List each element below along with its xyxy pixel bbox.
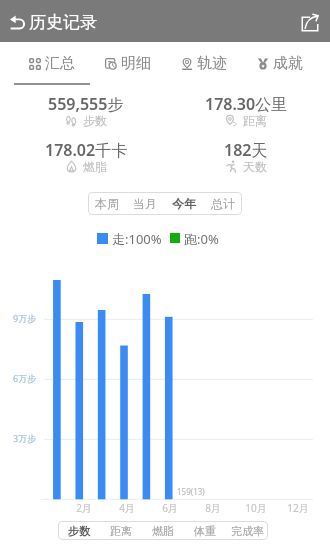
- staticText: 178.02千卡: [45, 139, 128, 161]
- button[interactable]: 体重: [184, 521, 226, 540]
- staticText: 159(13): [177, 486, 205, 497]
- staticText: 历史记录: [29, 12, 97, 33]
- staticText: 10月: [241, 501, 271, 515]
- staticText: 走:100%: [112, 230, 162, 246]
- staticText: 明细: [121, 54, 151, 73]
- staticText: 559,555步: [48, 93, 124, 115]
- staticText: 182天: [224, 139, 268, 161]
- staticText: 当月: [133, 196, 157, 211]
- button[interactable]: 完成率: [226, 521, 268, 540]
- button[interactable]: 559,555步: [26, 93, 146, 129]
- staticText: 成就: [273, 54, 303, 73]
- staticText: 6万步: [13, 372, 37, 384]
- staticText: 汇总: [45, 54, 75, 73]
- button[interactable]: 成就: [242, 42, 318, 88]
- button[interactable]: 汇总: [14, 42, 90, 88]
- button[interactable]: 燃脂: [142, 521, 184, 540]
- staticText: 轨迹: [197, 54, 227, 73]
- staticText: 完成率: [231, 524, 264, 538]
- staticText: 6月: [155, 501, 185, 515]
- button[interactable]: 178.02千卡: [26, 139, 146, 175]
- staticText: 178.30公里: [205, 93, 288, 115]
- button[interactable]: 轨迹: [166, 42, 242, 88]
- button[interactable]: 距离: [100, 521, 142, 540]
- staticText: 3万步: [13, 432, 37, 444]
- staticText: 4月: [112, 501, 142, 515]
- button[interactable]: 182天: [186, 139, 306, 175]
- staticText: 燃脂: [83, 159, 107, 174]
- button[interactable]: 步数: [58, 521, 100, 540]
- button[interactable]: 明细: [90, 42, 166, 88]
- staticText: 12月: [283, 501, 313, 515]
- staticText: 本周: [95, 196, 119, 211]
- button[interactable]: 本周: [88, 192, 126, 215]
- button[interactable]: Back: [0, 0, 105, 42]
- button[interactable]: 当月: [126, 192, 164, 215]
- staticText: 8月: [198, 501, 228, 515]
- staticText: 步数: [83, 113, 107, 128]
- staticText: 今年: [172, 196, 196, 211]
- button[interactable]: 总计: [203, 192, 242, 215]
- staticText: 燃脂: [152, 524, 174, 538]
- staticText: 体重: [194, 524, 216, 538]
- staticText: 2月: [69, 501, 99, 515]
- staticText: 距离: [110, 524, 132, 538]
- staticText: 9万步: [13, 312, 37, 324]
- staticText: 跑:0%: [184, 230, 219, 246]
- staticText: 总计: [211, 196, 235, 211]
- staticText: 距离: [243, 113, 267, 128]
- staticText: 步数: [68, 524, 90, 538]
- staticText: 天数: [243, 159, 267, 174]
- button[interactable]: 178.30公里: [186, 93, 306, 129]
- button[interactable]: Share: [295, 0, 324, 42]
- button[interactable]: 今年: [164, 192, 203, 215]
